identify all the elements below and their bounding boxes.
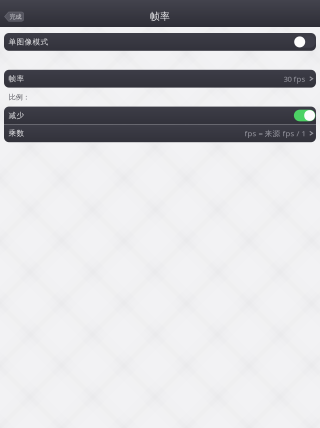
staticText: 30 fps (284, 73, 306, 84)
staticText: fps = 来源 fps / 1 (245, 128, 306, 139)
staticText: 帧率 (150, 10, 170, 23)
staticText: 帧率 (8, 74, 24, 83)
staticText: 乘数 (8, 128, 24, 138)
button[interactable]: 帧率 (4, 70, 316, 88)
staticText: 单图像模式 (8, 37, 48, 47)
staticText: 减少 (8, 111, 24, 120)
staticText: 比例： (9, 93, 30, 101)
staticText: 完成 (9, 13, 21, 20)
button[interactable]: 减少 (4, 107, 316, 124)
button[interactable]: 单图像模式 (4, 33, 316, 51)
button[interactable]: 完成 (4, 12, 24, 21)
button[interactable]: 乘数 (4, 124, 316, 142)
